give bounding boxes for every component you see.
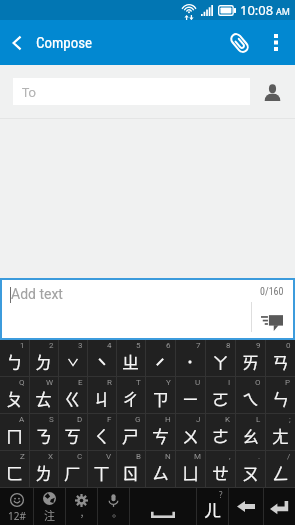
button[interactable]: I <box>205 377 235 414</box>
button[interactable]: P <box>265 377 295 414</box>
staticText: R <box>107 378 112 387</box>
button[interactable]: Navigate up <box>0 20 105 65</box>
staticText: 0 <box>286 341 291 350</box>
button[interactable]: Settings <box>65 488 97 525</box>
staticText: ? <box>219 489 223 500</box>
staticText: 4 <box>107 341 112 350</box>
button[interactable]: Attach <box>217 20 261 65</box>
button[interactable]: V <box>87 451 116 488</box>
button[interactable]: T <box>116 377 145 414</box>
staticText: ㄘ <box>152 423 169 448</box>
button[interactable]: To <box>13 78 250 105</box>
button[interactable]: More options <box>261 20 291 65</box>
button[interactable]: 5 <box>116 340 145 377</box>
staticText: F <box>107 415 112 424</box>
staticText: ㄥ <box>272 460 289 485</box>
staticText: , <box>229 452 231 461</box>
button[interactable]: L <box>235 414 265 451</box>
button[interactable]: ㄦ <box>196 488 228 525</box>
button[interactable]: Voice input <box>97 488 129 525</box>
staticText: ㄟ <box>242 386 259 411</box>
button[interactable]: U <box>175 377 205 414</box>
staticText: Y <box>166 378 171 387</box>
staticText: 2 <box>49 341 54 350</box>
button[interactable]: ; <box>265 414 295 451</box>
button[interactable]: X <box>29 451 58 488</box>
button[interactable]: Y <box>145 377 175 414</box>
button[interactable]: G <box>116 414 145 451</box>
button[interactable]: N <box>145 451 175 488</box>
staticText: V <box>106 452 112 461</box>
staticText: ㄦ <box>204 497 221 522</box>
staticText: N <box>165 452 171 461</box>
button[interactable]: C <box>58 451 87 488</box>
button[interactable]: Language <box>33 488 65 525</box>
staticText: T <box>136 378 141 387</box>
staticText: ㄩ <box>182 460 199 485</box>
button[interactable]: 0 <box>265 340 295 377</box>
button[interactable]: Q <box>0 377 29 414</box>
button[interactable]: D <box>58 414 87 451</box>
button[interactable]: Symbols <box>0 488 33 525</box>
button[interactable]: Add text <box>2 280 251 338</box>
button[interactable]: . <box>235 451 265 488</box>
button[interactable]: E <box>58 377 87 414</box>
staticText: ㄖ <box>122 460 139 485</box>
staticText: ㄌ <box>35 460 52 485</box>
staticText: ㄅ <box>6 349 23 374</box>
staticText: 7 <box>196 341 201 350</box>
button[interactable]: Send <box>251 305 293 338</box>
staticText: 5 <box>136 341 141 350</box>
staticText: ㄚ <box>212 349 229 374</box>
button[interactable]: 9 <box>235 340 265 377</box>
button[interactable]: , <box>205 451 235 488</box>
staticText: ㄒ <box>93 460 110 485</box>
button[interactable]: 4 <box>87 340 116 377</box>
button[interactable]: J <box>175 414 205 451</box>
staticText: H <box>165 415 171 424</box>
staticText: . <box>258 452 261 461</box>
button[interactable]: Enter <box>263 488 295 525</box>
button[interactable]: O <box>235 377 265 414</box>
staticText: 10:08 <box>240 1 274 19</box>
staticText: D <box>77 415 83 424</box>
staticText: 注 <box>44 507 55 523</box>
staticText: ㄈ <box>6 460 23 485</box>
button[interactable]: 6 <box>145 340 175 377</box>
staticText: J <box>196 415 201 424</box>
staticText: ㄆ <box>6 386 23 411</box>
button[interactable]: H <box>145 414 175 451</box>
staticText: S <box>49 415 54 424</box>
staticText: ㄏ <box>64 460 81 485</box>
staticText: Z <box>20 452 25 461</box>
staticText: ㄓ <box>122 349 139 374</box>
button[interactable]: B <box>116 451 145 488</box>
staticText: P <box>285 378 291 387</box>
button[interactable]: 1 <box>0 340 29 377</box>
button[interactable]: M <box>175 451 205 488</box>
button[interactable]: Backspace <box>228 488 263 525</box>
staticText: 0/160 <box>260 286 284 298</box>
button[interactable]: 7 <box>175 340 205 377</box>
button[interactable]: W <box>29 377 58 414</box>
staticText: ㄤ <box>272 423 289 448</box>
button[interactable]: S <box>29 414 58 451</box>
staticText: ㄑ <box>93 423 110 448</box>
staticText: ㄎ <box>64 423 81 448</box>
staticText: O <box>255 378 261 387</box>
staticText: ㄞ <box>242 349 259 374</box>
button[interactable]: 3 <box>58 340 87 377</box>
button[interactable]: / <box>265 451 295 488</box>
button[interactable]: 2 <box>29 340 58 377</box>
button[interactable]: Pick contact <box>257 77 287 107</box>
staticText: ㄊ <box>35 386 52 411</box>
staticText: 。 <box>109 508 119 522</box>
button[interactable]: 8 <box>205 340 235 377</box>
staticText: A <box>19 415 25 424</box>
button[interactable]: K <box>205 414 235 451</box>
button[interactable]: F <box>87 414 116 451</box>
button[interactable]: R <box>87 377 116 414</box>
button[interactable]: Space <box>129 488 196 525</box>
button[interactable]: Z <box>0 451 29 488</box>
button[interactable]: A <box>0 414 29 451</box>
